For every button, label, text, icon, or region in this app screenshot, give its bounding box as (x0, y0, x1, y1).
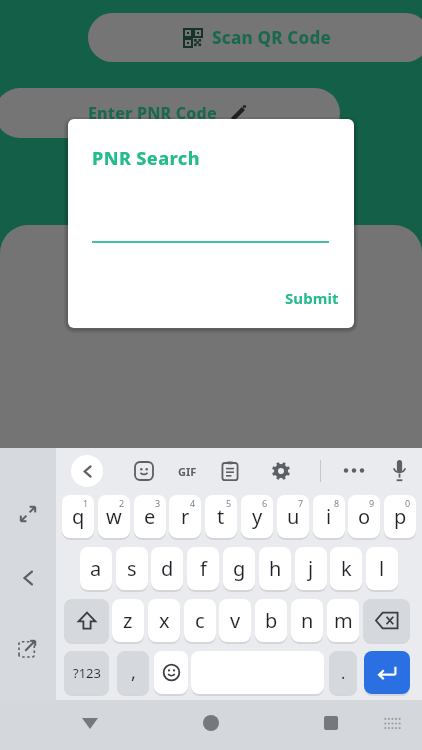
staticText: 0 (405, 497, 411, 509)
staticText: z (123, 607, 133, 634)
staticText: r (181, 503, 190, 530)
button[interactable] (64, 599, 109, 642)
staticText: c (195, 607, 205, 634)
button[interactable]: u (277, 495, 309, 538)
button[interactable] (393, 460, 406, 482)
button[interactable]: Scan QR Code (88, 13, 422, 62)
button[interactable]: . (329, 651, 357, 694)
staticText: ?123 (73, 664, 101, 682)
button[interactable]: c (184, 599, 216, 642)
staticText: i (326, 503, 332, 530)
staticText: . (341, 662, 346, 684)
staticText: t (217, 503, 225, 530)
staticText: j (308, 555, 314, 582)
button[interactable]: GIF (174, 460, 200, 482)
button[interactable]: a (80, 547, 112, 590)
button[interactable]: h (259, 547, 291, 590)
staticText: e (144, 503, 156, 530)
button[interactable] (324, 716, 338, 730)
button[interactable]: ?123 (64, 651, 109, 694)
button[interactable]: l (366, 547, 398, 590)
button[interactable]: x (148, 599, 180, 642)
button[interactable]: q (62, 495, 94, 538)
button[interactable] (20, 506, 36, 522)
staticText: , (131, 660, 136, 685)
staticText: 2 (119, 497, 125, 509)
button[interactable]: p (384, 495, 416, 538)
staticText: Scan QR Code (212, 26, 331, 49)
staticText: o (358, 503, 371, 530)
staticText: 1 (83, 497, 89, 509)
button[interactable] (21, 571, 35, 585)
button[interactable]: e (134, 495, 166, 538)
staticText: PNR Search (92, 146, 200, 171)
staticText: b (265, 607, 278, 634)
button[interactable]: t (205, 495, 237, 538)
button[interactable]: j (295, 547, 327, 590)
staticText: 7 (298, 497, 304, 509)
button[interactable]: w (98, 495, 130, 538)
staticText: GIF (178, 464, 197, 479)
button[interactable]: n (291, 599, 323, 642)
staticText: w (106, 503, 122, 530)
staticText: d (161, 555, 174, 582)
staticText: h (269, 555, 282, 582)
button[interactable]: m (327, 599, 359, 642)
staticText: l (379, 555, 385, 582)
staticText: s (127, 555, 137, 582)
staticText: a (90, 555, 102, 582)
button[interactable] (343, 468, 365, 473)
staticText: y (252, 503, 263, 530)
button[interactable]: y (241, 495, 273, 538)
staticText: q (72, 503, 85, 530)
staticText: 9 (369, 497, 375, 509)
button[interactable] (384, 717, 401, 730)
button[interactable] (154, 651, 188, 694)
button[interactable]: f (187, 547, 219, 590)
button[interactable]: , (117, 651, 149, 694)
staticText: p (394, 503, 407, 530)
button[interactable]: Submit (281, 281, 343, 315)
button[interactable] (221, 461, 239, 481)
button[interactable] (364, 651, 410, 694)
button[interactable]: g (223, 547, 255, 590)
button[interactable]: z (112, 599, 144, 642)
staticText: n (301, 607, 314, 634)
button[interactable]: Enter PNR Code (0, 88, 340, 138)
button[interactable]: k (330, 547, 362, 590)
button[interactable] (363, 599, 410, 642)
button[interactable] (19, 639, 37, 657)
staticText: k (341, 555, 352, 582)
staticText: 4 (190, 497, 196, 509)
staticText: f (200, 555, 207, 582)
staticText: v (230, 607, 241, 634)
staticText: 8 (334, 497, 340, 509)
button[interactable]: r (169, 495, 201, 538)
staticText: 3 (155, 497, 161, 509)
button[interactable]: b (255, 599, 287, 642)
staticText: u (287, 503, 300, 530)
staticText: 5 (226, 497, 232, 509)
staticText: Submit (285, 288, 339, 308)
button[interactable] (82, 718, 98, 729)
button[interactable] (272, 462, 290, 480)
staticText: Enter PNR Code (88, 102, 217, 124)
staticText: 6 (262, 497, 268, 509)
button[interactable]: o (348, 495, 380, 538)
button[interactable]: d (151, 547, 183, 590)
button[interactable]: i (313, 495, 345, 538)
staticText: g (233, 555, 246, 582)
button[interactable] (71, 455, 103, 487)
button[interactable] (135, 462, 153, 480)
button[interactable]: s (116, 547, 148, 590)
staticText: x (159, 607, 170, 634)
button[interactable]: v (219, 599, 251, 642)
button[interactable] (203, 715, 219, 731)
staticText: m (334, 607, 353, 634)
